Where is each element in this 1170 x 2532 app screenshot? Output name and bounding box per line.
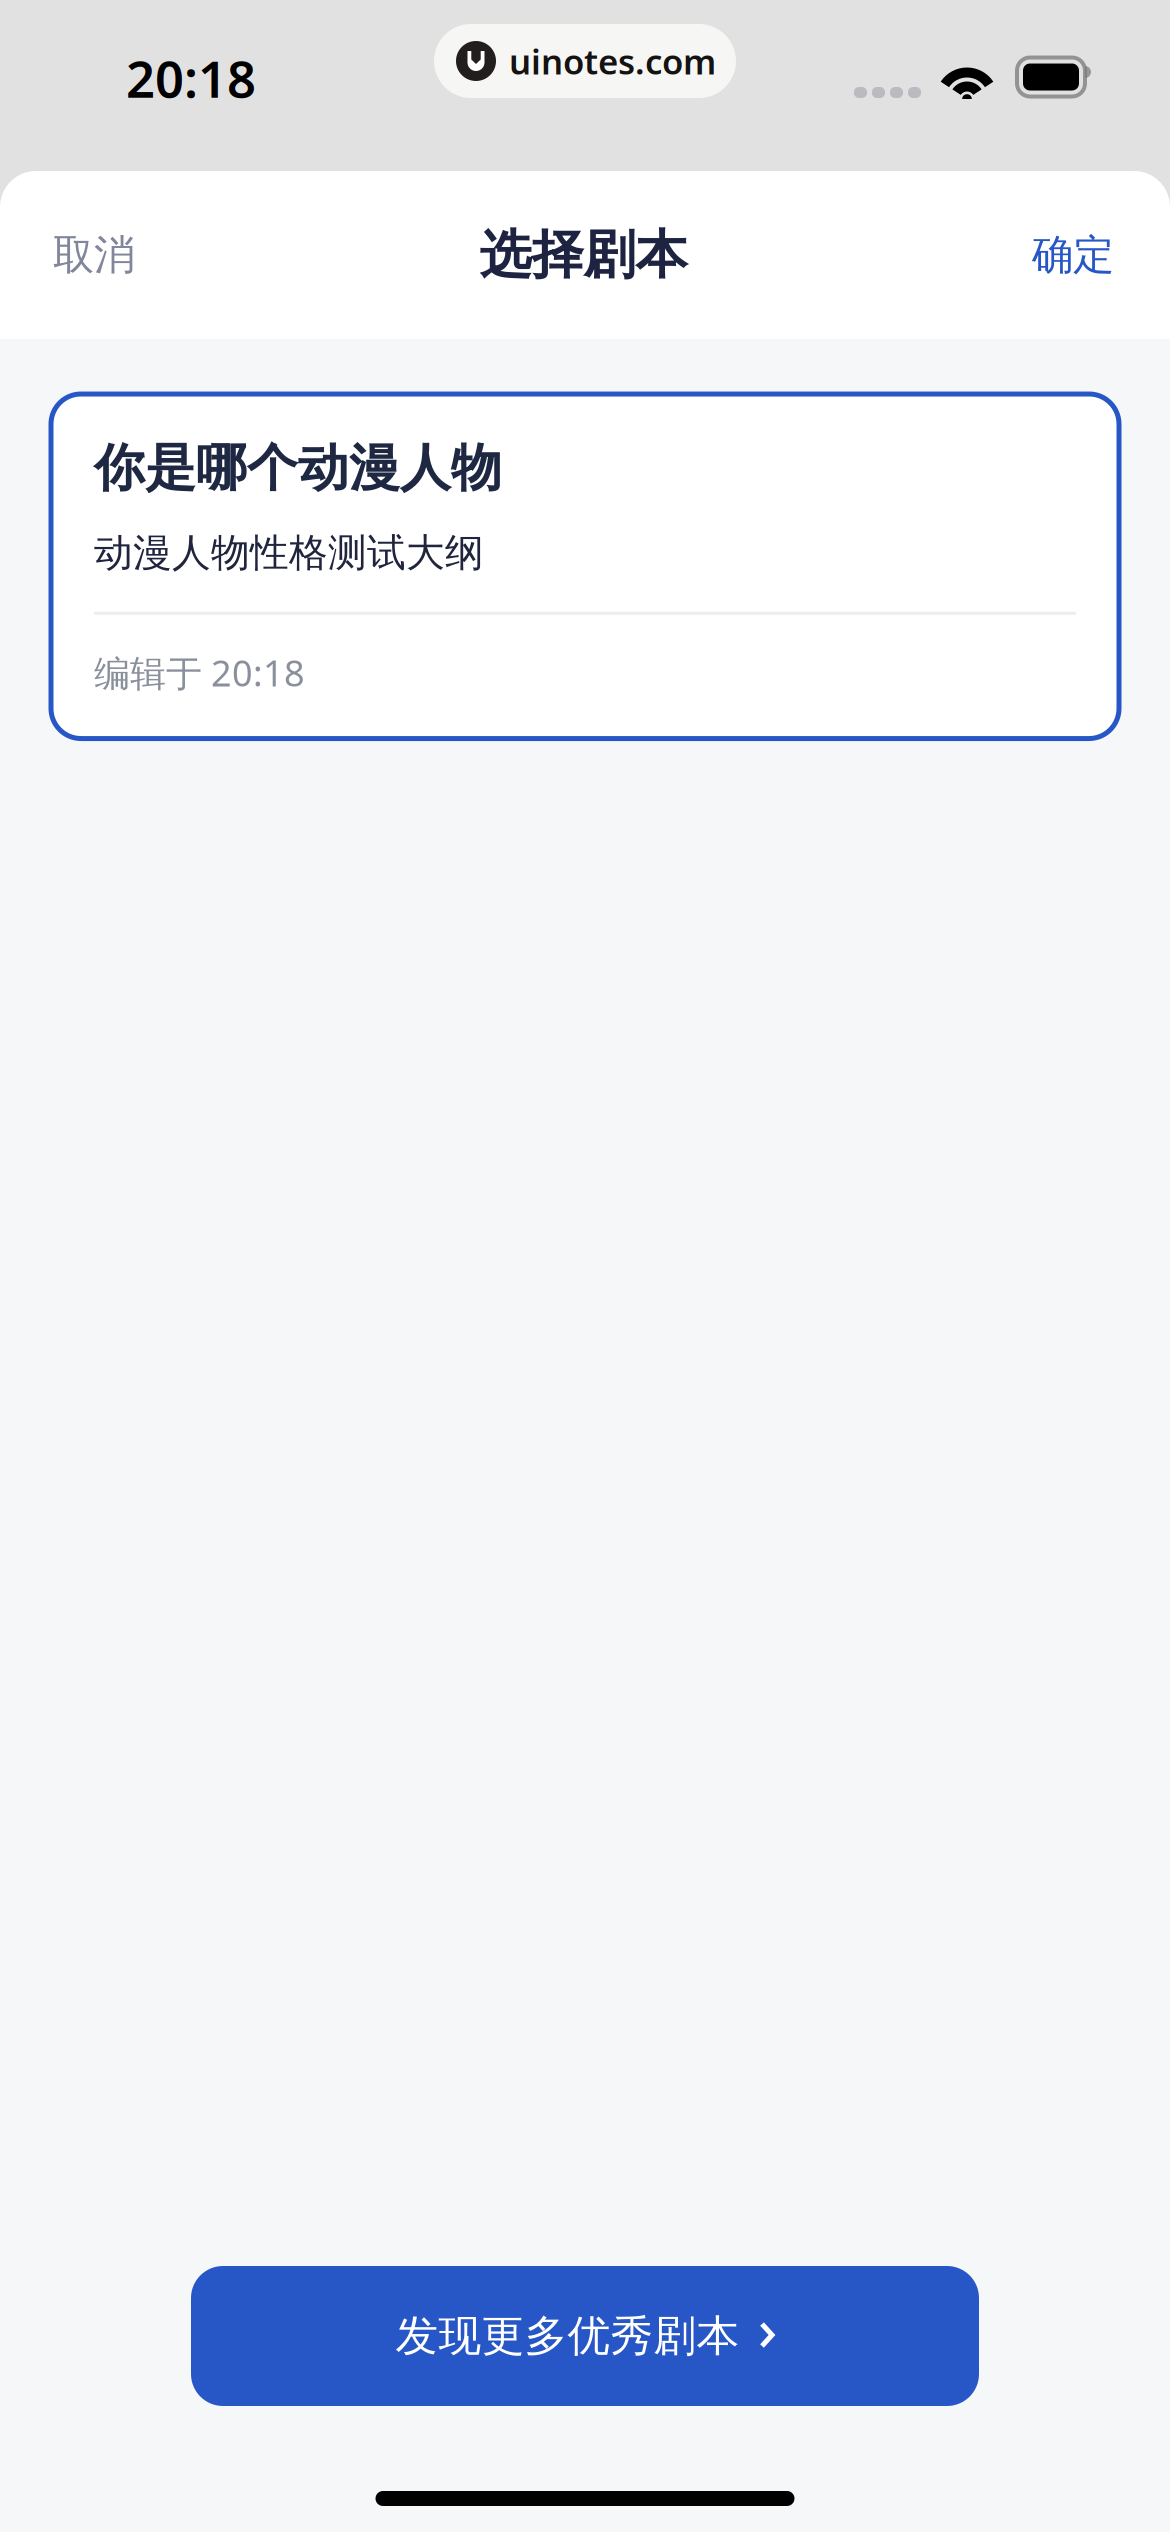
staticText: 选择剧本: [479, 223, 687, 287]
button[interactable]: 取消: [0, 198, 175, 312]
button[interactable]: 确定: [992, 198, 1170, 312]
staticText: 你是哪个动漫人物: [94, 437, 502, 499]
staticText: 取消: [53, 230, 135, 280]
button[interactable]: 你是哪个动漫人物: [51, 394, 1119, 738]
staticText: 编辑于 20:18: [94, 649, 305, 696]
staticText: 20:18: [126, 44, 256, 112]
staticText: 动漫人物性格测试大纲: [94, 529, 484, 577]
button[interactable]: 发现更多优秀剧本: [191, 2266, 979, 2406]
staticText: 发现更多优秀剧本: [395, 2310, 739, 2362]
staticText: 确定: [1032, 230, 1114, 280]
staticText: uinotes.com: [509, 38, 716, 84]
